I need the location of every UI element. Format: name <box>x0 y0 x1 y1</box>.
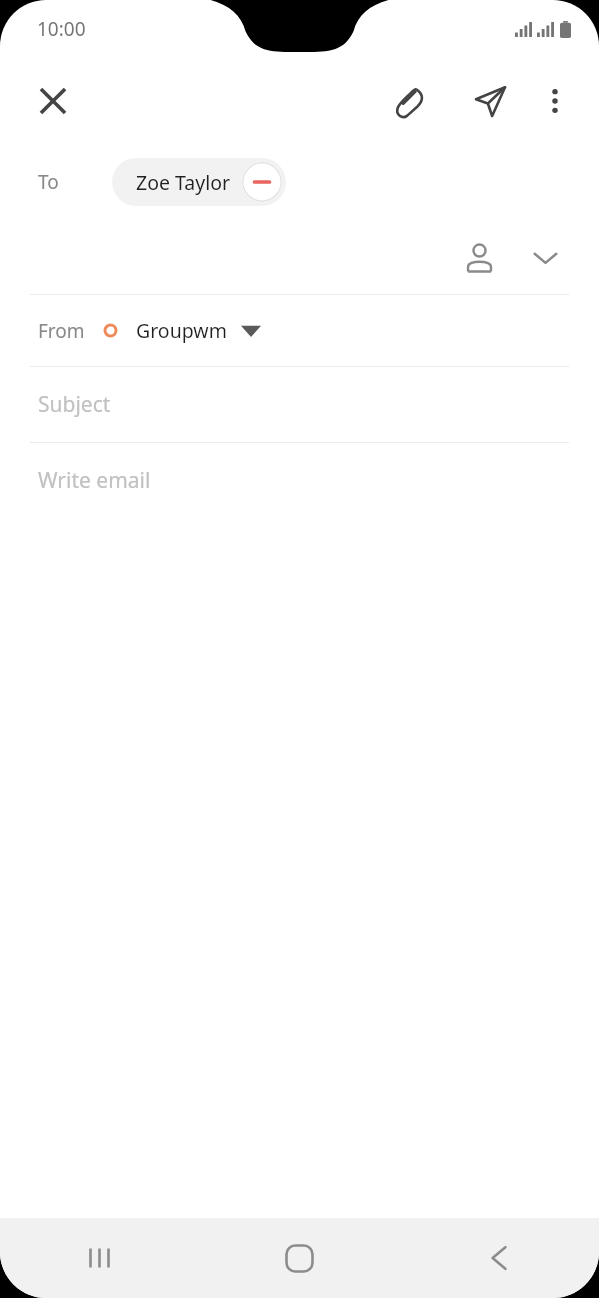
button[interactable]: Recent apps <box>0 1218 199 1298</box>
button[interactable]: From <box>0 295 599 366</box>
button[interactable]: More options <box>527 73 583 129</box>
button[interactable]: To <box>0 144 599 220</box>
button[interactable]: Subject <box>0 367 599 442</box>
staticText: To <box>38 169 59 195</box>
button[interactable]: Home <box>199 1218 399 1298</box>
button[interactable]: Add from contacts <box>451 229 507 285</box>
button[interactable]: Write email <box>0 443 599 518</box>
button[interactable]: Attach file <box>379 70 441 132</box>
button[interactable]: Back <box>399 1218 599 1298</box>
staticText: Subject <box>38 390 111 419</box>
staticText: Write email <box>38 466 151 495</box>
button[interactable]: Show Cc and Bcc <box>517 229 573 285</box>
staticText: Groupwm <box>136 317 227 344</box>
staticText: From <box>38 318 85 344</box>
button[interactable]: Close <box>22 70 84 132</box>
button[interactable]: Remove recipient <box>242 162 282 202</box>
staticText: Zoe Taylor <box>136 169 231 196</box>
staticText: 10:00 <box>37 16 86 42</box>
button[interactable]: Send <box>459 70 521 132</box>
button[interactable]: Zoe Taylor <box>112 158 286 206</box>
